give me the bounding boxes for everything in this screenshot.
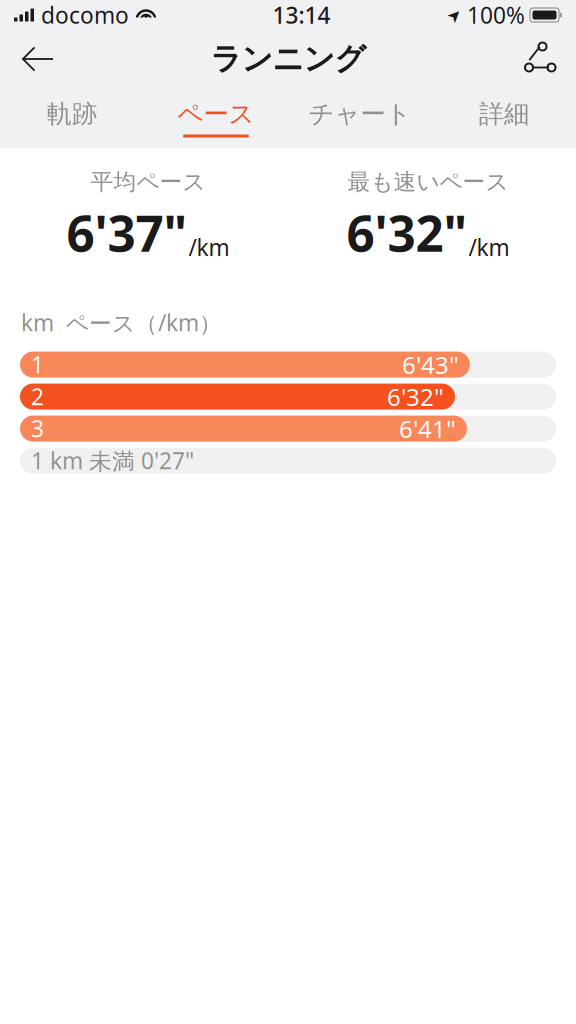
staticText: 2 (31, 381, 44, 412)
staticText: /km (188, 232, 229, 262)
staticText: ランニング (210, 40, 365, 78)
staticText: /km (468, 232, 509, 262)
button[interactable]: ペース (144, 88, 288, 148)
staticText: 1 km 未満 0'27" (31, 445, 194, 476)
staticText: 軌跡 (47, 98, 97, 129)
staticText: 6'41" (399, 413, 456, 444)
staticText: km ペース（/km） (21, 307, 222, 338)
staticText: 平均ペース (90, 168, 205, 196)
staticText: 6'32" (387, 381, 444, 412)
button[interactable]: Back (8, 34, 68, 84)
staticText: 詳細 (479, 98, 529, 129)
staticText: ➤ (447, 5, 462, 25)
staticText: 6'32" (346, 200, 467, 265)
button[interactable]: 詳細 (432, 88, 576, 148)
staticText: docomo (41, 0, 129, 30)
staticText: ペース (177, 98, 254, 129)
staticText: 1 (31, 349, 44, 380)
staticText: 最も速いペース (347, 168, 508, 196)
staticText: 100% (467, 0, 525, 30)
staticText: 3 (31, 413, 44, 444)
button[interactable]: 軌跡 (0, 88, 144, 148)
staticText: 6'43" (402, 349, 459, 380)
button[interactable]: チャート (288, 88, 432, 148)
staticText: チャート (308, 98, 411, 129)
staticText: 6'37" (66, 200, 187, 265)
button[interactable]: Share route (508, 34, 568, 84)
staticText: 13:14 (272, 0, 330, 30)
